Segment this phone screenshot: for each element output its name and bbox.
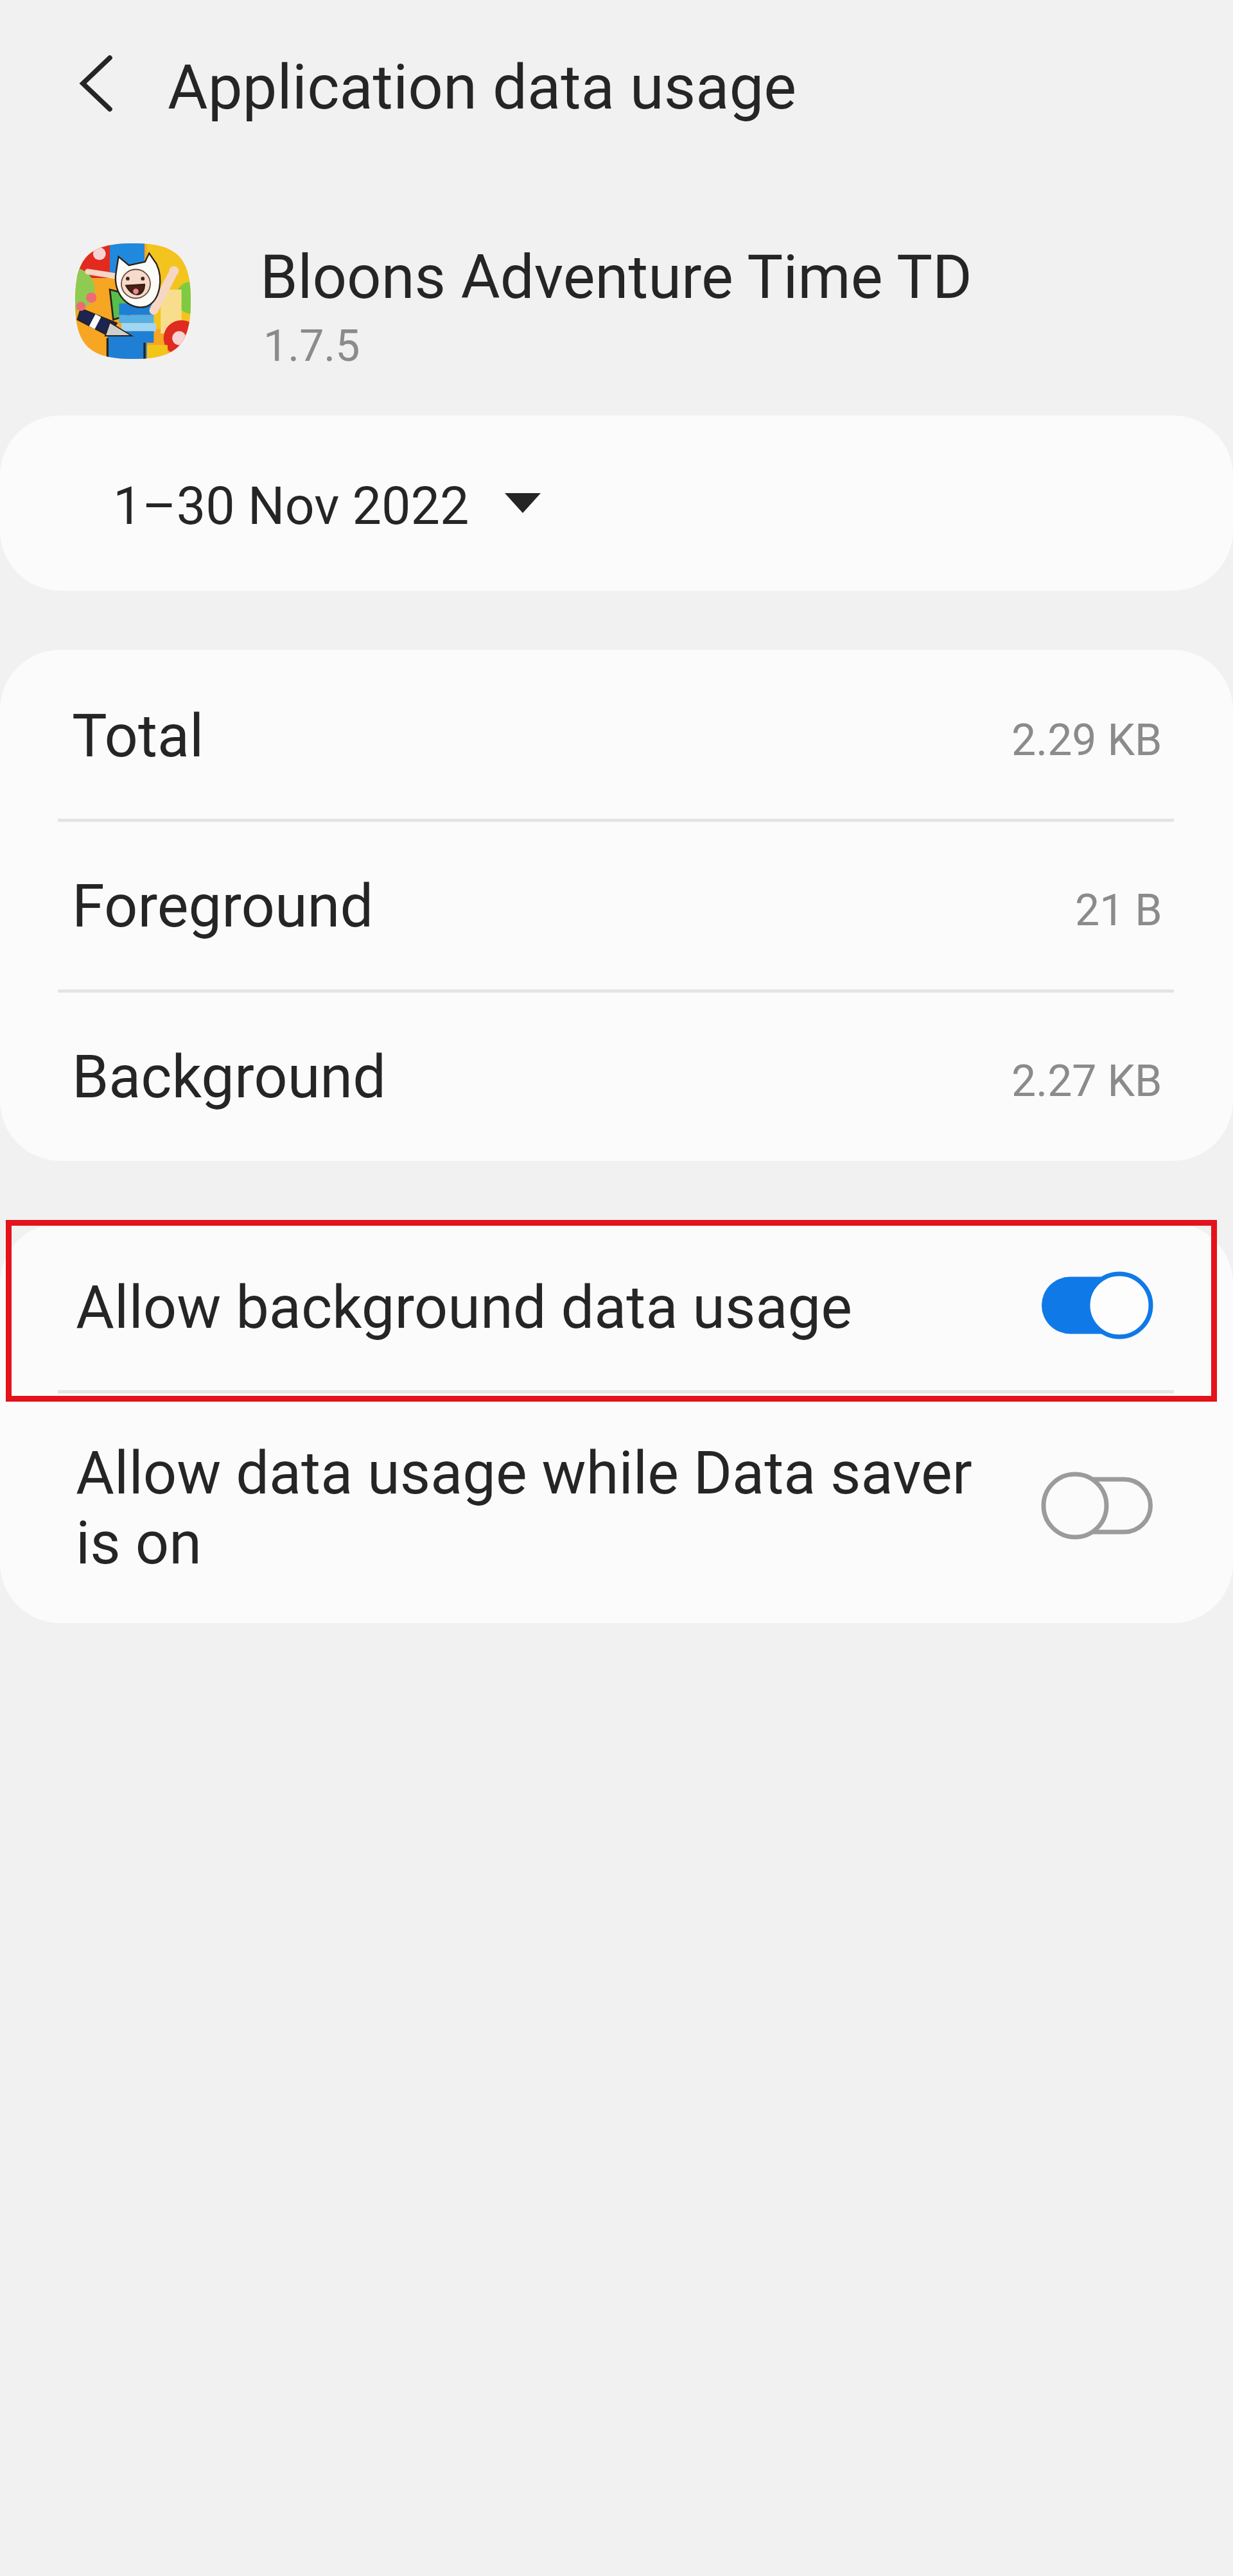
staticText: 21 B — [1075, 885, 1162, 936]
staticText: Allow data usage while Data saver is on — [76, 1439, 988, 1578]
button[interactable]: Allow background data usage — [0, 1223, 1233, 1392]
staticText: 1.7.5 — [263, 320, 360, 372]
button[interactable]: Foreground — [0, 820, 1233, 991]
button[interactable]: 1–30 Nov 2022 — [0, 415, 1233, 591]
staticText: 2.27 KB — [1011, 1056, 1162, 1107]
button[interactable]: Bloons Adventure Time TD icon — [75, 243, 191, 359]
button[interactable]: Navigate up — [56, 43, 137, 124]
button[interactable]: Total — [0, 650, 1233, 820]
staticText: 1–30 Nov 2022 — [113, 476, 469, 537]
staticText: Foreground — [72, 872, 374, 941]
button[interactable]: Allow data usage while Data saver is on — [0, 1392, 1233, 1623]
staticText: Allow background data usage — [76, 1273, 988, 1343]
button[interactable]: Background — [0, 991, 1233, 1161]
button[interactable]: Switch off — [1042, 1472, 1153, 1539]
staticText: Bloons Adventure Time TD — [260, 242, 972, 313]
staticText: Application data usage — [168, 51, 797, 124]
staticText: 2.29 KB — [1011, 715, 1162, 766]
button[interactable]: Switch on — [1042, 1272, 1153, 1339]
staticText: Total — [72, 702, 204, 771]
staticText: Background — [72, 1043, 387, 1112]
